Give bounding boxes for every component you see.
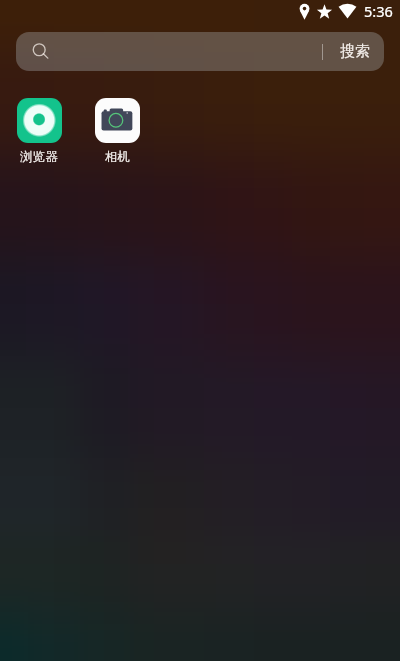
other: Search xyxy=(32,43,50,61)
staticText: 搜索 xyxy=(340,42,370,61)
staticText: 5:36 xyxy=(364,1,393,21)
other: Location xyxy=(299,3,311,20)
button[interactable]: 浏览器 xyxy=(0,98,78,168)
staticText: 相机 xyxy=(105,149,130,165)
button[interactable]: 相机 xyxy=(78,98,156,168)
other: Wi-Fi xyxy=(338,4,357,19)
other: Starred xyxy=(316,3,333,20)
button[interactable]: Search xyxy=(16,32,384,71)
staticText: 浏览器 xyxy=(20,149,58,165)
